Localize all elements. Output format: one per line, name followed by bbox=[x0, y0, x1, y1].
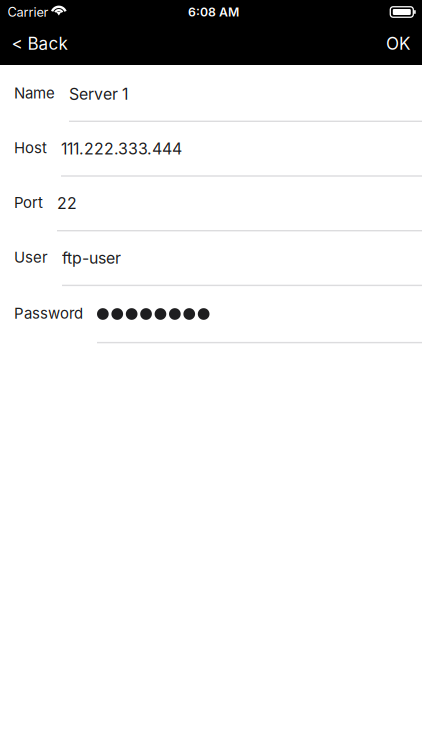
staticText: < bbox=[11, 33, 22, 54]
button[interactable]: Password bbox=[0, 286, 422, 343]
staticText: 111.222.333.444 bbox=[61, 139, 182, 158]
staticText: ftp-user bbox=[62, 248, 121, 268]
button[interactable]: User bbox=[0, 231, 422, 286]
staticText: Port bbox=[14, 193, 43, 212]
button[interactable]: Host bbox=[0, 122, 422, 177]
staticText: Password bbox=[14, 304, 83, 322]
staticText: Host bbox=[14, 139, 47, 157]
staticText: Name bbox=[14, 84, 55, 102]
button[interactable]: OK bbox=[370, 24, 422, 65]
button[interactable]: Name bbox=[0, 67, 422, 122]
staticText: OK bbox=[386, 33, 410, 54]
staticText: 22 bbox=[57, 194, 77, 213]
button[interactable]: Port bbox=[0, 177, 422, 231]
staticText: Server 1 bbox=[69, 84, 128, 104]
staticText: Carrier bbox=[7, 4, 48, 20]
button[interactable]: < bbox=[0, 24, 81, 65]
staticText: 6:08 AM bbox=[188, 5, 239, 19]
staticText: Back bbox=[27, 33, 67, 54]
staticText: User bbox=[14, 248, 48, 266]
